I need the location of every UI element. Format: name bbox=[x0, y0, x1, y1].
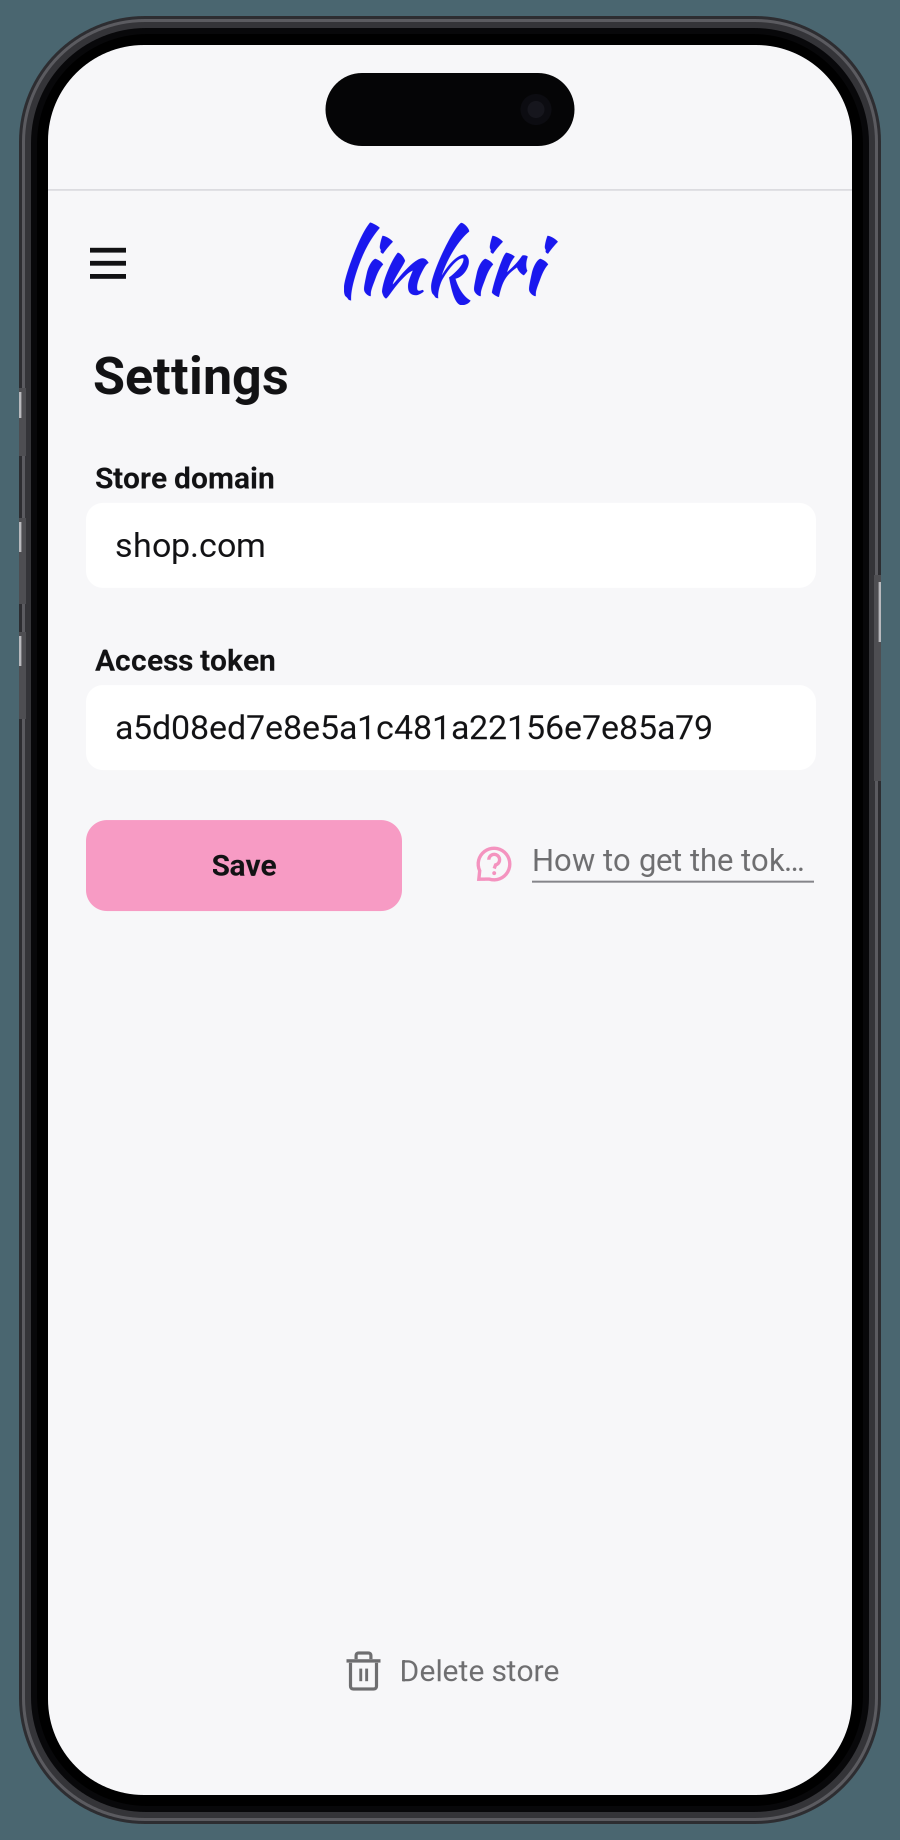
button[interactable]: How to get the token bbox=[475, 842, 816, 889]
staticText: How to get the token bbox=[532, 842, 816, 879]
button[interactable]: Save bbox=[86, 820, 402, 911]
button[interactable]: Delete store bbox=[324, 1639, 575, 1703]
staticText: Delete store bbox=[399, 1653, 559, 1689]
staticText: Store domain bbox=[95, 461, 275, 496]
staticText: shop.com bbox=[115, 525, 266, 565]
staticText: Access token bbox=[95, 643, 276, 678]
button[interactable]: Menu bbox=[48, 210, 148, 299]
staticText: Save bbox=[211, 848, 276, 883]
staticText: a5d08ed7e8e5a1c481a22156e7e85a79 bbox=[115, 708, 713, 747]
staticText: linkiri bbox=[335, 200, 540, 326]
staticText: Settings bbox=[93, 346, 289, 407]
